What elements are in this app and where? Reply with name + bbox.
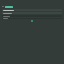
other: Highlighted value	[5, 6, 13, 8]
button[interactable]	[2, 9, 62, 11]
button[interactable]: Highlighted value	[2, 5, 62, 8]
button[interactable]	[2, 12, 62, 14]
button[interactable]	[2, 15, 62, 17]
button[interactable]	[2, 18, 62, 19]
